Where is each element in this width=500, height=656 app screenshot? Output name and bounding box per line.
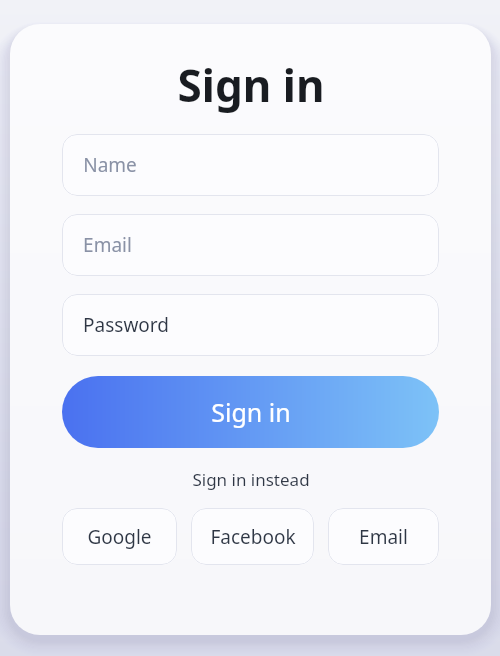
staticText: Password xyxy=(83,312,169,338)
button[interactable]: Name xyxy=(62,134,439,196)
button[interactable]: Sign in with Facebook xyxy=(191,508,314,565)
staticText: Email xyxy=(83,232,132,258)
button[interactable]: Sign in instead xyxy=(184,465,318,494)
staticText: Sign in xyxy=(177,55,325,115)
staticText: Google xyxy=(87,524,152,550)
staticText: Sign in xyxy=(211,395,291,429)
staticText: Sign in instead xyxy=(192,468,310,491)
staticText: Email xyxy=(359,524,408,550)
button[interactable]: Sign in xyxy=(62,376,439,448)
staticText: Name xyxy=(83,152,137,178)
staticText: Facebook xyxy=(210,524,296,550)
button[interactable]: Password xyxy=(62,294,439,356)
button[interactable]: Sign in with Email xyxy=(328,508,439,565)
button[interactable]: Sign in with Google xyxy=(62,508,177,565)
button[interactable]: Email xyxy=(62,214,439,276)
